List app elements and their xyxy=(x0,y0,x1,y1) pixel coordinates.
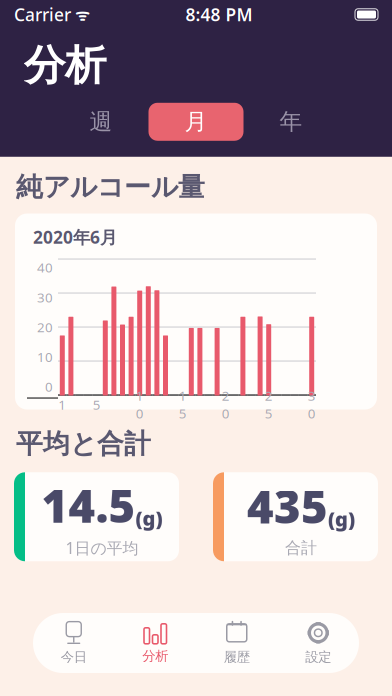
button[interactable]: 月 xyxy=(148,103,243,141)
button[interactable]: 今日 xyxy=(33,613,114,673)
staticText: 履歴 xyxy=(224,649,250,665)
staticText: 40 xyxy=(37,258,53,276)
staticText: 1 xyxy=(58,396,66,413)
button[interactable]: 分析 xyxy=(114,613,196,673)
staticText: 週 xyxy=(89,108,112,136)
button[interactable]: 年 xyxy=(243,103,338,141)
staticText: 8:48 PM xyxy=(185,3,252,26)
staticText: 今日 xyxy=(61,649,87,665)
staticText: 分析 xyxy=(24,40,106,91)
button[interactable]: 履歴 xyxy=(196,613,277,673)
staticText: 10 xyxy=(37,348,53,366)
staticText: 15 xyxy=(179,387,187,422)
button[interactable]: 週 xyxy=(53,103,148,141)
staticText: 設定 xyxy=(305,649,331,665)
staticText: 1日の平均 xyxy=(65,537,138,558)
staticText: 平均と合計 xyxy=(16,427,151,460)
staticText: 5 xyxy=(93,396,101,413)
staticText: 2020年6月 xyxy=(33,225,117,248)
staticText: 14.5 xyxy=(41,475,135,535)
staticText: 30 xyxy=(308,387,316,422)
staticText: 月 xyxy=(184,108,207,136)
staticText: 10 xyxy=(136,387,144,422)
button[interactable]: 設定 xyxy=(277,613,359,673)
staticText: Carrier xyxy=(14,3,71,26)
staticText: 25 xyxy=(265,387,273,422)
staticText: (g) xyxy=(328,505,355,532)
staticText: 20 xyxy=(222,387,230,422)
staticText: 435 xyxy=(247,476,328,536)
staticText: 0 xyxy=(45,378,53,395)
staticText: (g) xyxy=(135,505,162,531)
staticText: 20 xyxy=(37,318,53,336)
staticText: ᯤ xyxy=(71,4,90,25)
staticText: 分析 xyxy=(142,648,168,664)
staticText: 年 xyxy=(279,108,302,136)
staticText: 合計 xyxy=(285,538,317,558)
staticText: 純アルコール量 xyxy=(16,171,205,204)
staticText: 30 xyxy=(37,288,53,306)
